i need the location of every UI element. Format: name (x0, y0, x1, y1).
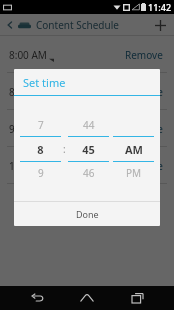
button[interactable]: Remove (123, 155, 165, 177)
staticText: 11:42 (148, 1, 172, 13)
button[interactable]: 45 (68, 137, 109, 161)
button[interactable]: PM (113, 162, 154, 184)
staticText: 9:30 AM (9, 122, 47, 136)
button[interactable]: 44 (68, 114, 109, 136)
button[interactable]: Remove (123, 44, 165, 66)
button[interactable]: 7 (20, 114, 61, 136)
staticText: Remove (125, 85, 163, 99)
button[interactable]: Remove (123, 81, 165, 103)
button[interactable]: 10:15 AM (9, 159, 60, 173)
staticText: 8:00 AM (9, 48, 47, 62)
button[interactable]: 8:45 AM (9, 85, 54, 99)
button[interactable]: Back (4, 19, 16, 31)
button[interactable]: 8 (20, 137, 61, 161)
staticText: : (63, 142, 66, 156)
button[interactable]: 9 (20, 162, 61, 184)
button[interactable]: 9:30 AM (9, 122, 54, 136)
staticText: 8 (37, 142, 44, 157)
staticText: Remove (125, 48, 163, 62)
staticText: 7 (38, 118, 44, 132)
button[interactable]: Home (74, 286, 100, 310)
staticText: 9 (38, 166, 44, 180)
staticText: 44 (83, 118, 95, 132)
button[interactable]: Add (150, 15, 170, 35)
staticText: 10:15 AM (9, 159, 53, 173)
staticText: Set time (23, 75, 66, 90)
button[interactable]: 8:00 AM (9, 48, 54, 62)
button[interactable]: 46 (68, 162, 109, 184)
staticText: 8:45 AM (9, 85, 47, 99)
button[interactable]: Back (24, 286, 50, 310)
button[interactable]: AM (113, 137, 154, 161)
staticText: Remove (125, 122, 163, 136)
staticText: Done (76, 208, 99, 220)
staticText: 45 (82, 142, 95, 157)
staticText: AM (125, 142, 143, 157)
button[interactable]: Remove (123, 118, 165, 140)
staticText: Content Schedule (36, 18, 119, 32)
staticText: PM (126, 166, 142, 180)
staticText: 46 (83, 166, 95, 180)
button[interactable]: Recent apps (124, 286, 150, 310)
staticText: Remove (125, 159, 163, 173)
button[interactable]: Done (14, 202, 160, 226)
